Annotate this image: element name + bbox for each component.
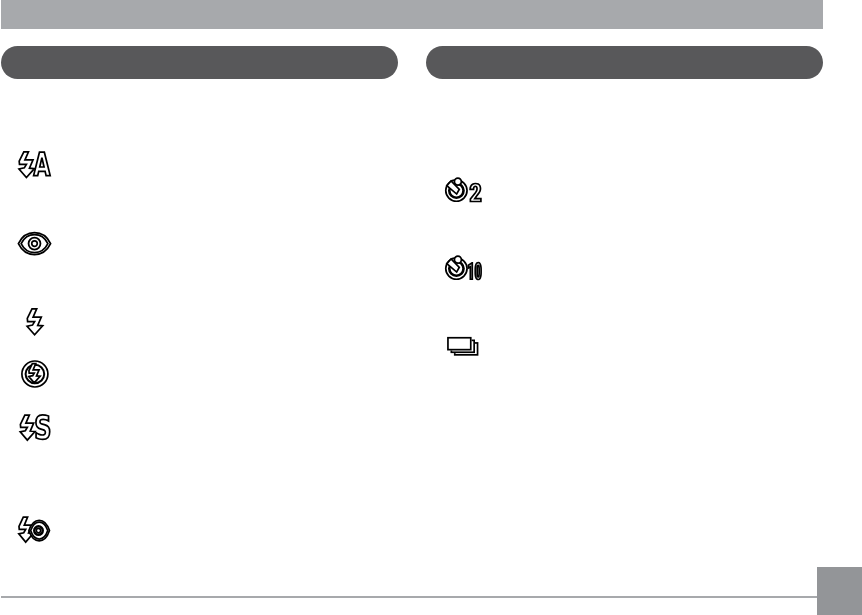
button[interactable]: Drive mode <box>426 46 823 79</box>
button[interactable]: Red-eye reduction <box>4 226 64 262</box>
button[interactable]: Two second self timer <box>438 174 494 208</box>
button[interactable]: Flash on <box>4 300 64 344</box>
button[interactable]: Flash mode <box>1 46 398 79</box>
button[interactable]: Flash off <box>4 356 64 392</box>
button[interactable]: Flash with red-eye reduction <box>4 508 64 552</box>
button[interactable]: Continuous burst shooting <box>438 330 494 362</box>
button[interactable]: Ten second self timer <box>438 252 494 286</box>
button[interactable]: Slow sync flash <box>4 406 64 450</box>
button[interactable]: Auto flash <box>4 140 64 188</box>
